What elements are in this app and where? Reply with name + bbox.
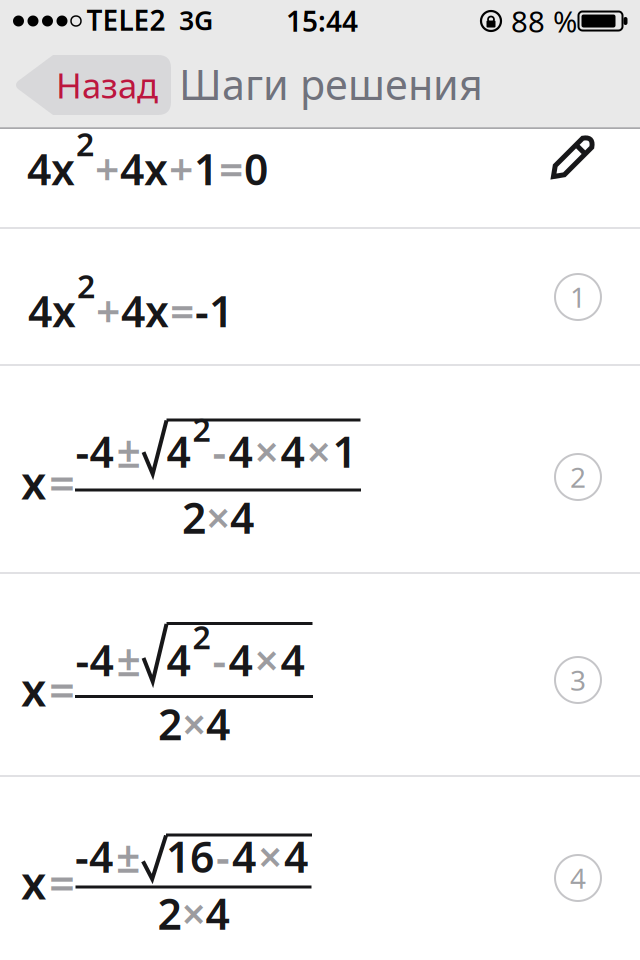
staticText: 2 xyxy=(192,408,210,450)
staticText: 4x xyxy=(121,282,169,339)
staticText: 4 xyxy=(228,631,252,688)
staticText: 4 xyxy=(206,695,230,752)
staticText: 4 xyxy=(166,423,190,479)
staticText: x xyxy=(21,452,46,512)
staticText: 4 xyxy=(232,828,256,884)
staticText: 4x xyxy=(28,282,76,339)
button[interactable]: Шаг 1 xyxy=(555,274,601,320)
staticText: 4x xyxy=(27,140,75,197)
staticText: 4 xyxy=(284,828,308,884)
staticText: = xyxy=(49,452,75,512)
button[interactable]: Изменить уравнение xyxy=(550,134,596,180)
staticText: = xyxy=(49,852,75,912)
staticText: 4 xyxy=(280,423,304,479)
staticText: × xyxy=(181,885,205,941)
staticText: ± xyxy=(116,828,140,884)
staticText: × xyxy=(182,695,206,752)
staticText: -4 xyxy=(75,828,113,884)
staticText: ± xyxy=(116,631,140,688)
staticText: × xyxy=(258,828,282,884)
button[interactable]: Назад xyxy=(15,55,171,115)
staticText: 88 % xyxy=(511,1,577,40)
staticText: 2 xyxy=(157,885,181,941)
staticText: 16 xyxy=(166,828,214,884)
staticText: 1 xyxy=(194,140,218,197)
staticText: = xyxy=(49,659,75,719)
staticText: = xyxy=(170,282,194,339)
staticText: 2 xyxy=(192,615,210,658)
staticText: 15:44 xyxy=(286,2,358,40)
staticText: 3G xyxy=(179,2,213,38)
staticText: - xyxy=(212,631,226,688)
staticText: 1 xyxy=(332,423,356,479)
staticText: -4 xyxy=(75,423,113,479)
staticText: 4 xyxy=(280,631,304,688)
staticText: -1 xyxy=(195,282,233,339)
staticText: × xyxy=(306,423,330,479)
staticText: 2 xyxy=(570,458,586,496)
staticText: 4 xyxy=(570,859,586,897)
staticText: × xyxy=(206,489,230,545)
staticText: 2 xyxy=(182,489,206,545)
staticText: 4 xyxy=(228,423,252,479)
staticText: 0 xyxy=(244,140,268,197)
staticText: 2 xyxy=(76,122,94,165)
staticText: 1 xyxy=(570,278,586,316)
button[interactable]: Шаг 2 xyxy=(555,454,601,500)
staticText: - xyxy=(216,828,230,884)
staticText: 4 xyxy=(230,489,254,545)
staticText: × xyxy=(254,423,278,479)
staticText: 2 xyxy=(158,695,182,752)
staticText: 2 xyxy=(77,264,95,307)
staticText: + xyxy=(169,140,193,197)
staticText: + xyxy=(95,140,119,197)
staticText: = xyxy=(219,140,243,197)
staticText: 4 xyxy=(205,885,229,941)
staticText: + xyxy=(96,282,120,339)
button[interactable]: Шаг 3 xyxy=(555,657,601,703)
staticText: Шаги решения xyxy=(179,57,483,111)
staticText: × xyxy=(254,631,278,688)
staticText: -4 xyxy=(75,631,113,688)
staticText: x xyxy=(21,852,46,912)
staticText: 4x xyxy=(120,140,168,197)
staticText: x xyxy=(21,659,46,719)
button[interactable]: Шаг 4 xyxy=(555,855,601,901)
staticText: - xyxy=(212,423,226,479)
staticText: ± xyxy=(116,423,140,479)
staticText: 3 xyxy=(570,661,586,699)
staticText: TELE2 xyxy=(86,1,165,39)
staticText: Назад xyxy=(56,62,158,108)
staticText: 4 xyxy=(166,631,190,688)
